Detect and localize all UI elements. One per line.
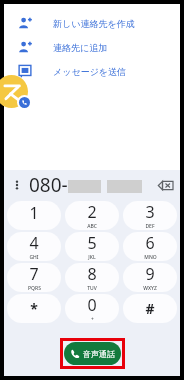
staticText: 0 [87, 294, 97, 316]
staticText: 音声通話 [83, 349, 115, 359]
button[interactable]: 1 [7, 201, 61, 230]
staticText: 1 [29, 202, 39, 224]
staticText: * [30, 299, 38, 318]
staticText: + [91, 316, 94, 323]
staticText: 連絡先に追加 [53, 42, 108, 53]
staticText: 新しい連絡先を作成 [53, 18, 135, 29]
staticText: 6 [145, 232, 155, 254]
staticText: 080- [29, 172, 68, 198]
staticText: 3 [145, 201, 155, 223]
staticText: # [145, 299, 155, 318]
button[interactable]: 9 [123, 263, 177, 292]
staticText: 7 [29, 263, 39, 285]
button[interactable]: 0 [65, 294, 119, 323]
staticText: 4 [29, 232, 39, 254]
button[interactable]: 3 [123, 201, 177, 230]
staticText: メッセージを送信 [53, 66, 127, 77]
staticText: 5 [87, 232, 97, 254]
button[interactable]: 2 [65, 201, 119, 230]
staticText: 8 [87, 263, 97, 285]
staticText: WXYZ [143, 285, 157, 292]
button[interactable]: 音声通話 [64, 342, 121, 365]
staticText: PQRS [28, 285, 41, 292]
button[interactable]: 7 [7, 263, 61, 292]
button[interactable]: * [7, 294, 61, 323]
staticText: ABC [87, 223, 97, 230]
button[interactable]: 4 [7, 232, 61, 261]
button[interactable]: 8 [65, 263, 119, 292]
button[interactable]: More options [8, 176, 26, 194]
button[interactable]: Backspace [154, 174, 176, 196]
staticText: JKL [88, 254, 96, 261]
staticText: GHI [29, 254, 39, 261]
button[interactable]: 6 [123, 232, 177, 261]
staticText: 9 [145, 263, 155, 285]
staticText: 2 [87, 201, 97, 223]
button[interactable]: 新しい連絡先を作成 [4, 11, 180, 35]
button[interactable]: # [123, 294, 177, 323]
button[interactable]: メッセージを送信 [4, 59, 180, 83]
button[interactable]: 連絡先に追加 [4, 35, 180, 59]
staticText: MNO [144, 254, 157, 261]
staticText: DEF [145, 223, 155, 230]
button[interactable]: 5 [65, 232, 119, 261]
staticText: TUV [87, 285, 97, 292]
